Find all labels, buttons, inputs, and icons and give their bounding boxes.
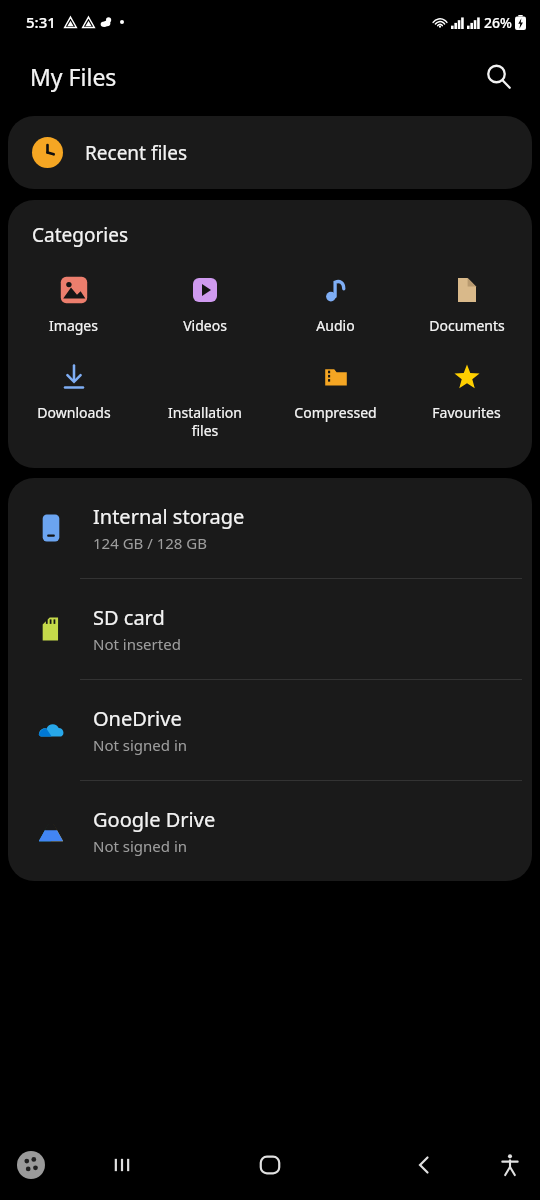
- button[interactable]: Home: [246, 1141, 294, 1189]
- staticText: Internal storage: [93, 503, 245, 530]
- staticText: My Files: [30, 61, 117, 92]
- staticText: Favourites: [432, 403, 501, 422]
- button[interactable]: Compressed: [270, 357, 401, 424]
- staticText: Not signed in: [93, 836, 188, 856]
- button[interactable]: Google Drive: [8, 781, 532, 881]
- staticText: 124 GB / 128 GB: [93, 533, 208, 553]
- staticText: Images: [49, 316, 98, 335]
- staticText: SD card: [93, 604, 165, 631]
- staticText: Audio: [316, 316, 355, 335]
- staticText: Not signed in: [93, 735, 188, 755]
- staticText: 26%: [484, 13, 512, 32]
- button[interactable]: Downloads: [8, 357, 139, 424]
- staticText: Recent files: [85, 140, 188, 166]
- button[interactable]: Videos: [139, 270, 270, 337]
- button[interactable]: Recent files: [8, 116, 532, 189]
- button[interactable]: Images: [8, 270, 139, 337]
- button[interactable]: Back: [400, 1141, 448, 1189]
- staticText: 5:31: [26, 12, 56, 32]
- button[interactable]: OneDrive: [8, 680, 532, 781]
- staticText: OneDrive: [93, 705, 182, 732]
- button[interactable]: Installation files: [139, 357, 270, 442]
- staticText: Videos: [183, 316, 227, 335]
- button[interactable]: Favourites: [401, 357, 532, 424]
- button[interactable]: Internal storage: [8, 478, 532, 579]
- staticText: Not inserted: [93, 634, 181, 654]
- staticText: Google Drive: [93, 806, 216, 833]
- staticText: Downloads: [37, 403, 111, 422]
- staticText: Installation files: [168, 403, 242, 440]
- staticText: Documents: [429, 316, 505, 335]
- button[interactable]: Game tools: [14, 1148, 48, 1182]
- button[interactable]: Search: [476, 54, 520, 98]
- button[interactable]: Recents: [98, 1141, 146, 1189]
- staticText: Categories: [32, 222, 128, 248]
- button[interactable]: SD card: [8, 579, 532, 680]
- button[interactable]: Audio: [270, 270, 401, 337]
- staticText: Compressed: [294, 403, 377, 422]
- button[interactable]: Documents: [401, 270, 532, 337]
- button[interactable]: Accessibility: [490, 1145, 530, 1185]
